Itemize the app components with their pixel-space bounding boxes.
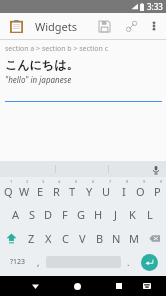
button[interactable]: Back bbox=[27, 278, 43, 294]
button[interactable]: Home bbox=[69, 278, 85, 294]
staticText: F bbox=[62, 207, 68, 222]
button[interactable]: K bbox=[124, 202, 141, 226]
staticText: S bbox=[29, 207, 36, 222]
staticText: , bbox=[37, 256, 40, 268]
button[interactable]: 2 bbox=[16, 177, 32, 202]
staticText: J bbox=[114, 207, 118, 222]
button[interactable]: C bbox=[57, 226, 74, 250]
staticText: T bbox=[69, 184, 76, 199]
staticText: Y bbox=[86, 184, 93, 199]
staticText: U bbox=[102, 184, 111, 199]
staticText: P bbox=[154, 184, 161, 199]
staticText: 1 bbox=[10, 179, 13, 184]
button[interactable]: J bbox=[107, 202, 124, 226]
button[interactable]: Z bbox=[23, 226, 40, 250]
staticText: 5 bbox=[75, 179, 78, 184]
button[interactable]: ?123 bbox=[4, 250, 31, 274]
staticText: こんにちは。 bbox=[5, 57, 79, 72]
staticText: L bbox=[147, 207, 153, 222]
staticText: X bbox=[45, 231, 52, 246]
staticText: N bbox=[112, 231, 121, 246]
button[interactable]: M bbox=[125, 226, 142, 250]
button[interactable]: H bbox=[90, 202, 107, 226]
staticText: V bbox=[79, 231, 86, 246]
staticText: C bbox=[62, 231, 69, 246]
staticText: 0 bbox=[160, 179, 163, 184]
button[interactable]: V bbox=[74, 226, 91, 250]
button[interactable]: Enter bbox=[141, 254, 158, 271]
staticText: 6 bbox=[92, 179, 95, 184]
button[interactable]: X bbox=[40, 226, 57, 250]
button[interactable]: Recent apps bbox=[111, 278, 127, 294]
button[interactable]: 9 bbox=[132, 177, 149, 202]
staticText: Widgets bbox=[35, 19, 78, 34]
button[interactable]: S bbox=[24, 202, 40, 226]
staticText: I bbox=[122, 184, 126, 199]
staticText: W bbox=[19, 184, 30, 199]
button[interactable]: 7 bbox=[98, 177, 115, 202]
button[interactable]: 6 bbox=[81, 177, 98, 202]
staticText: "hello" in japanese bbox=[5, 74, 72, 85]
button[interactable]: 1 bbox=[0, 177, 16, 202]
staticText: 8 bbox=[126, 179, 129, 184]
button[interactable]: 8 bbox=[115, 177, 132, 202]
button[interactable]: A bbox=[8, 202, 24, 226]
button[interactable]: 0 bbox=[149, 177, 166, 202]
button[interactable]: Backspace bbox=[142, 226, 166, 250]
button[interactable]: More options bbox=[145, 17, 163, 35]
button[interactable]: . bbox=[121, 250, 136, 274]
staticText: ?123 bbox=[10, 257, 26, 267]
staticText: 3:33 bbox=[147, 1, 163, 12]
staticText: Z bbox=[28, 231, 35, 246]
button[interactable]: App icon bbox=[6, 16, 26, 36]
staticText: K bbox=[129, 207, 136, 222]
button[interactable]: Voice input bbox=[150, 164, 161, 175]
staticText: O bbox=[136, 184, 145, 199]
button[interactable]: G bbox=[73, 202, 90, 226]
staticText: A bbox=[12, 207, 20, 222]
staticText: 7 bbox=[109, 179, 112, 184]
button[interactable]: N bbox=[108, 226, 125, 250]
staticText: D bbox=[44, 207, 53, 222]
button[interactable]: F bbox=[56, 202, 73, 226]
staticText: 3 bbox=[42, 179, 45, 184]
staticText: B bbox=[96, 231, 104, 246]
button[interactable]: B bbox=[91, 226, 108, 250]
button[interactable]: Link bbox=[120, 15, 142, 37]
staticText: Q bbox=[4, 184, 13, 199]
button[interactable]: , bbox=[31, 250, 46, 274]
staticText: . bbox=[127, 256, 130, 268]
staticText: 2 bbox=[26, 179, 29, 184]
staticText: 9 bbox=[143, 179, 146, 184]
button[interactable]: 3 bbox=[32, 177, 48, 202]
staticText: H bbox=[94, 207, 103, 222]
button[interactable]: Save bbox=[93, 15, 115, 37]
button[interactable]: Shift bbox=[0, 226, 23, 250]
button[interactable]: 4 bbox=[48, 177, 64, 202]
button[interactable]: Change keyboard bbox=[139, 278, 155, 294]
button[interactable]: 5 bbox=[64, 177, 81, 202]
staticText: R bbox=[53, 184, 60, 199]
button[interactable]: L bbox=[141, 202, 158, 226]
staticText: E bbox=[37, 184, 44, 199]
button[interactable]: D bbox=[40, 202, 56, 226]
staticText: M bbox=[129, 231, 139, 246]
staticText: G bbox=[77, 207, 86, 222]
staticText: section a > section b > section c bbox=[5, 44, 109, 54]
staticText: 4 bbox=[58, 179, 61, 184]
